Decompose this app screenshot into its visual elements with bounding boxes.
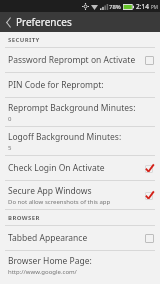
staticText: BROWSER <box>8 214 40 222</box>
staticText: Secure App Windows <box>8 185 92 197</box>
button[interactable]: Tabbed Appearance <box>0 226 160 250</box>
staticText: Tabbed Appearance <box>8 232 88 244</box>
button[interactable]: Logoff Background Minutes: <box>0 127 160 155</box>
staticText: 78% <box>109 3 121 11</box>
staticText: Do not allow screenshots of this app <box>8 198 111 206</box>
staticText: Reprompt Background Minutes: <box>8 102 136 114</box>
staticText: Check Login On Activate <box>8 162 105 174</box>
staticText: Password Reprompt on Activate <box>8 54 136 66</box>
button[interactable]: Password Reprompt on Activate <box>0 48 160 72</box>
staticText: SECURITY <box>8 36 40 44</box>
staticText: 0 <box>8 115 12 123</box>
staticText: 5 <box>8 144 12 152</box>
staticText: 2:14 <box>136 2 149 11</box>
button[interactable]: Reprompt Background Minutes: <box>0 98 160 126</box>
button[interactable]: Secure App Windows <box>0 181 160 209</box>
staticText: Logoff Background Minutes: <box>8 131 122 143</box>
button[interactable]: PIN Code for Reprompt: <box>0 73 160 97</box>
button[interactable]: Back <box>0 12 16 32</box>
staticText: PM <box>151 4 158 10</box>
staticText: Preferences <box>16 15 72 29</box>
button[interactable]: Check Login On Activate <box>0 156 160 180</box>
staticText: http://www.google.com/ <box>8 268 77 276</box>
staticText: Browser Home Page: <box>8 255 92 267</box>
staticText: PIN Code for Reprompt: <box>8 79 104 91</box>
button[interactable]: Browser Home Page: <box>0 251 160 279</box>
